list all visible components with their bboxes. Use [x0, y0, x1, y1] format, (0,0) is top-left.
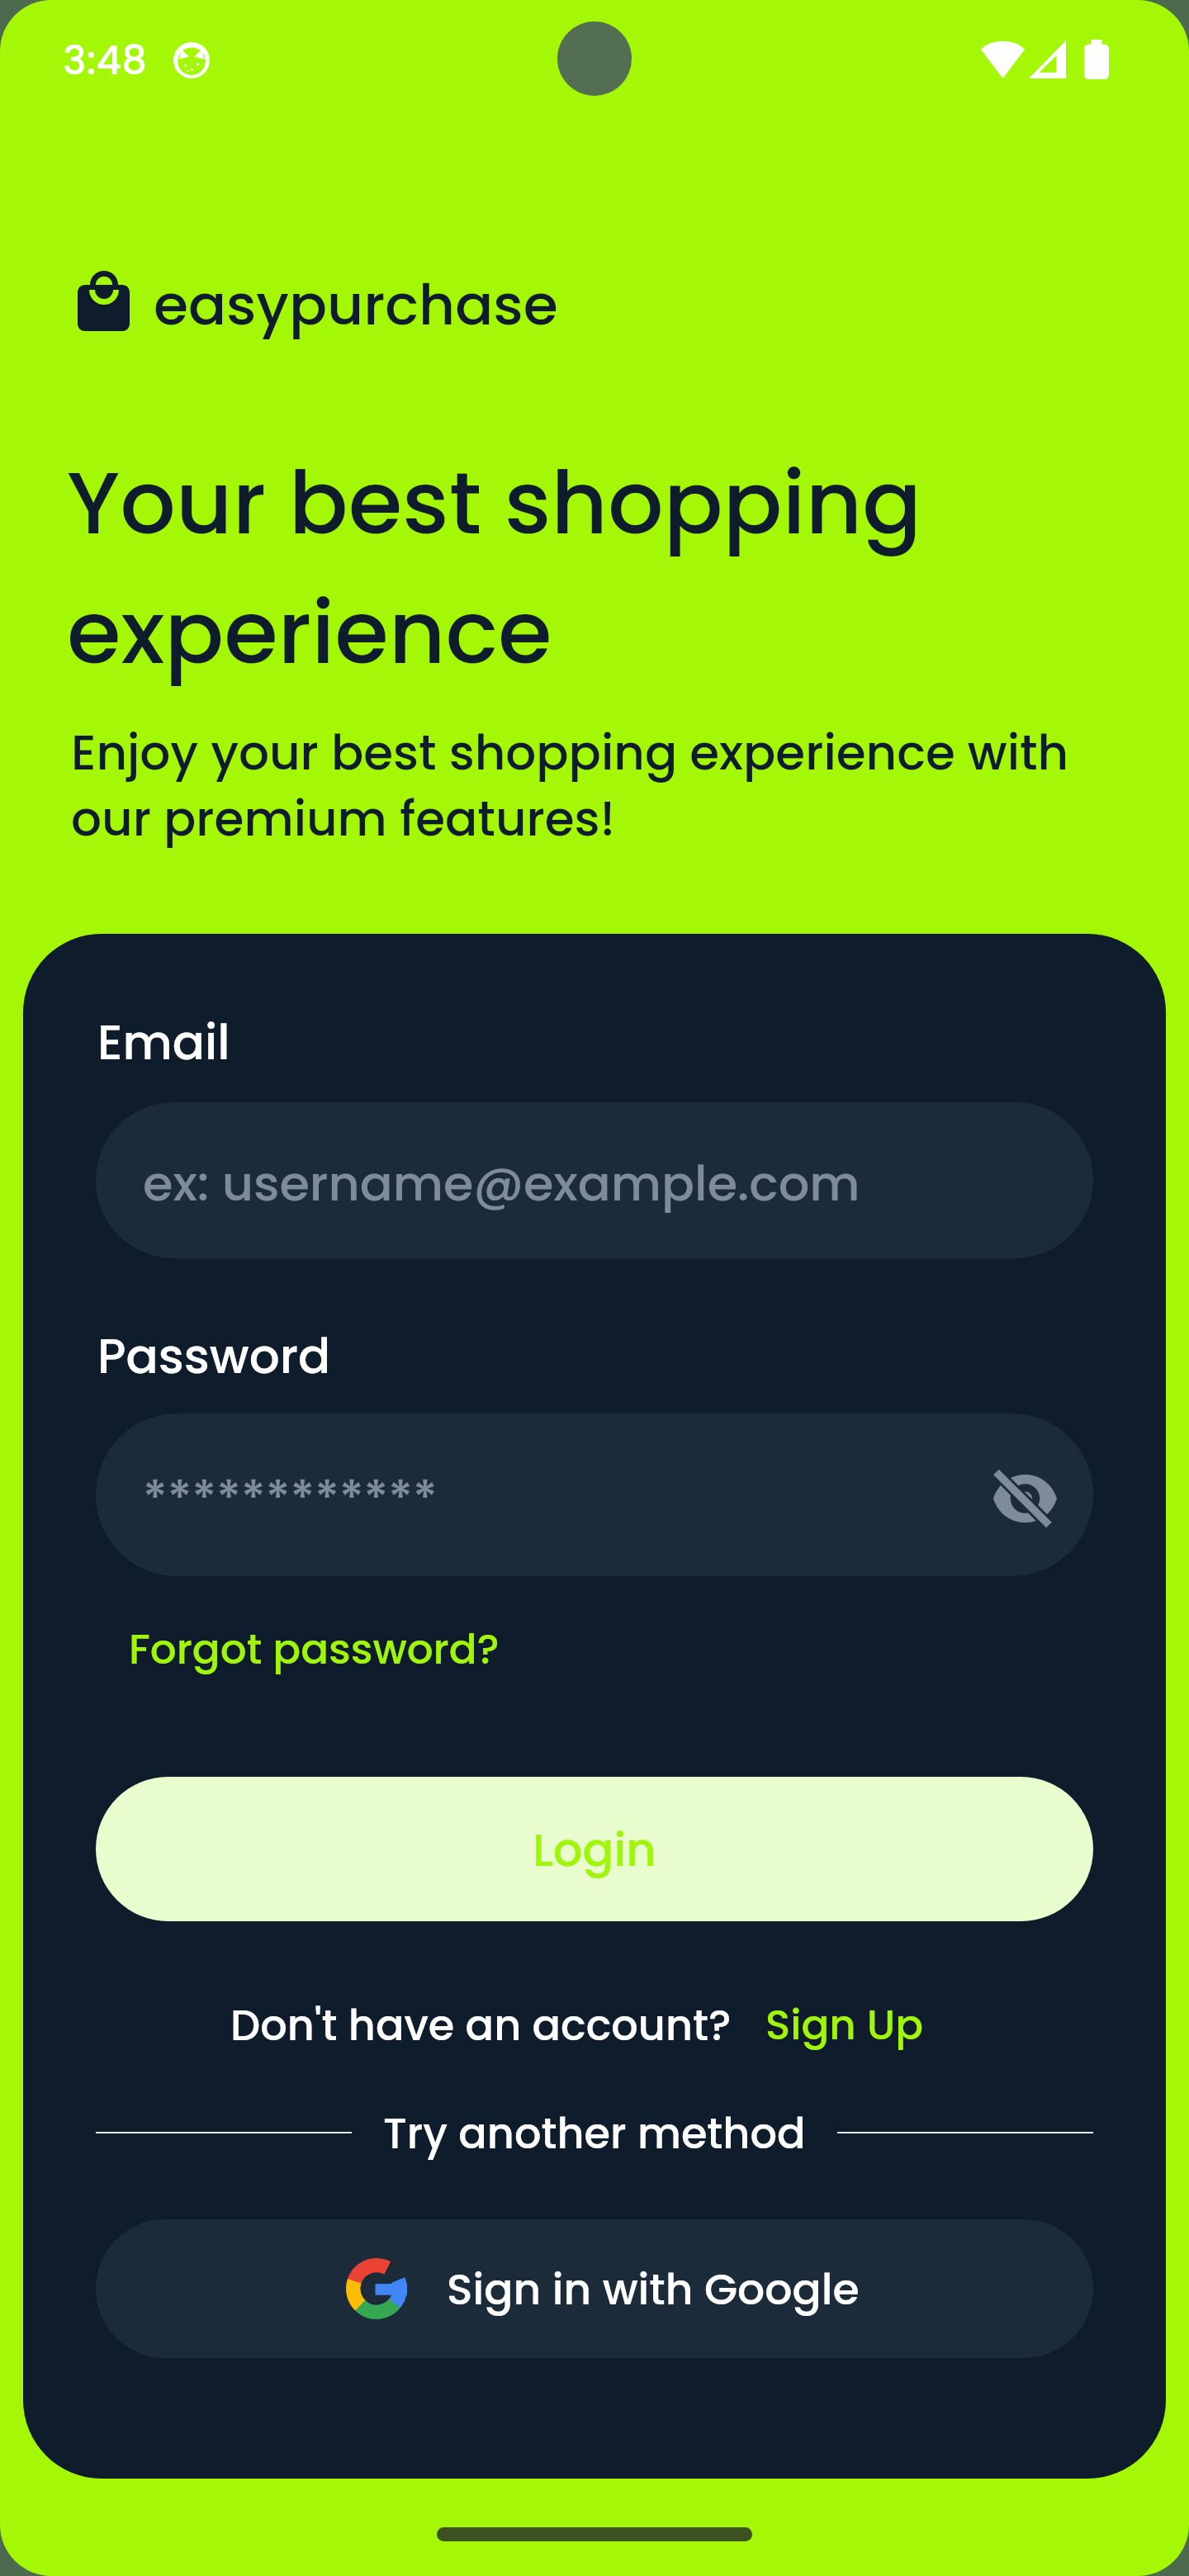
staticText: Email [97, 1009, 230, 1076]
staticText: ex: username@example.com [143, 1149, 860, 1218]
staticText: Try another method [383, 2104, 806, 2162]
button[interactable]: Forgot password? [129, 1621, 500, 1679]
button[interactable]: ************ [96, 1413, 1093, 1576]
button[interactable]: Show password [977, 1450, 1068, 1541]
staticText: easypurchase [154, 266, 558, 344]
button[interactable]: ex: username@example.com [96, 1102, 1093, 1258]
staticText: Enjoy your best shopping experience with… [71, 719, 1069, 853]
staticText: Password [97, 1323, 331, 1390]
staticText: Your best shopping experience [67, 442, 922, 694]
staticText: Sign in with Google [447, 2259, 860, 2319]
staticText: Sign Up [765, 1996, 924, 2054]
staticText: Don't have an account? [230, 1996, 732, 2054]
staticText: ************ [143, 1464, 438, 1532]
button[interactable]: Login [96, 1777, 1093, 1921]
staticText: 3:48 [63, 33, 147, 88]
button[interactable]: Sign Up [732, 1996, 924, 2054]
staticText: Login [533, 1817, 656, 1882]
staticText: Forgot password? [129, 1621, 500, 1679]
button[interactable]: Sign in with Google [96, 2219, 1093, 2358]
